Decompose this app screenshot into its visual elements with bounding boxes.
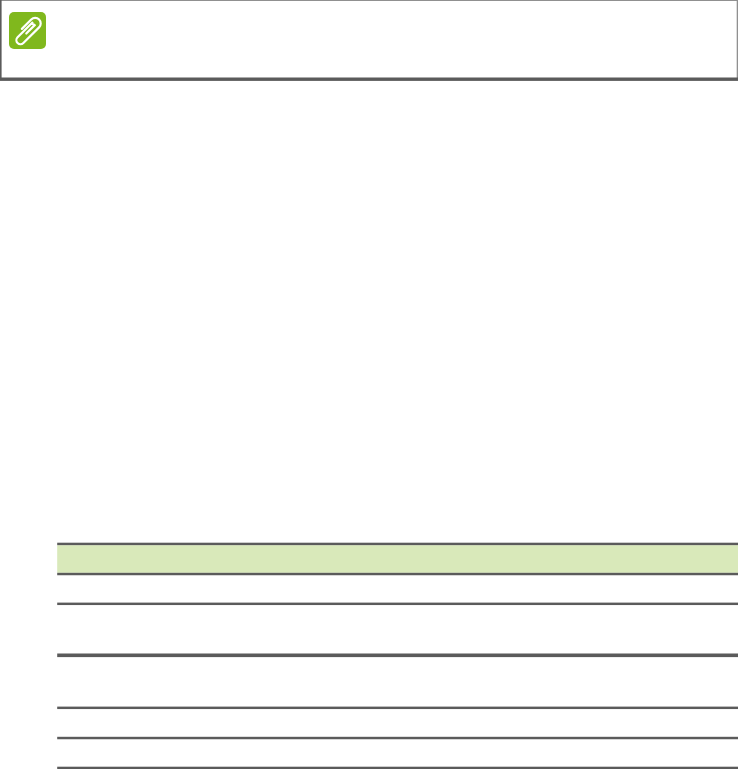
button[interactable]: [57, 545, 738, 573]
button[interactable]: Attachment: [0, 0, 738, 78]
button[interactable]: [57, 657, 738, 707]
button[interactable]: [57, 709, 738, 737]
button[interactable]: [57, 605, 738, 654]
button[interactable]: Attachment: [9, 12, 46, 49]
button[interactable]: [57, 575, 738, 603]
button[interactable]: [57, 739, 738, 767]
